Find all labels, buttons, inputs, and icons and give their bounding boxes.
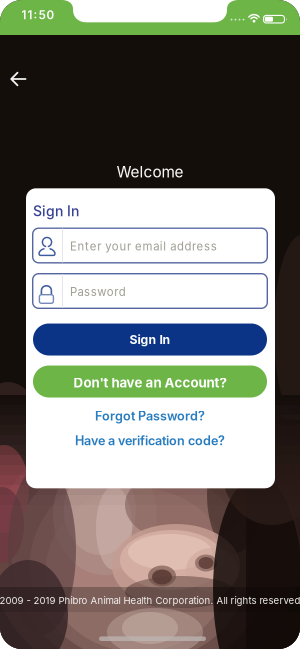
- staticText: Have a verification code?: [75, 433, 225, 448]
- staticText: Enter your email address: [70, 239, 217, 253]
- staticText: Forgot Password?: [95, 408, 205, 424]
- textField[interactable]: Enter your email address: [70, 239, 260, 253]
- staticText: Sign In: [129, 332, 170, 347]
- staticText: Don't have an Account?: [73, 375, 226, 391]
- button[interactable]: Don't have an Account?: [33, 365, 267, 397]
- staticText: 1 1 : 5 0: [21, 8, 54, 22]
- staticText: Password: [70, 285, 126, 299]
- button[interactable]: Forgot Password?: [95, 408, 205, 424]
- secureTextField[interactable]: Password: [70, 285, 260, 299]
- button[interactable]: Have a verification code?: [75, 433, 225, 448]
- button[interactable]: Sign In: [33, 323, 267, 355]
- staticText: Welcome: [116, 163, 183, 181]
- staticText: Sign In: [33, 203, 79, 220]
- staticText: 2009 - 2019 Phibro Animal Health Corpora…: [0, 595, 300, 606]
- button[interactable]: Back: [4, 65, 32, 93]
